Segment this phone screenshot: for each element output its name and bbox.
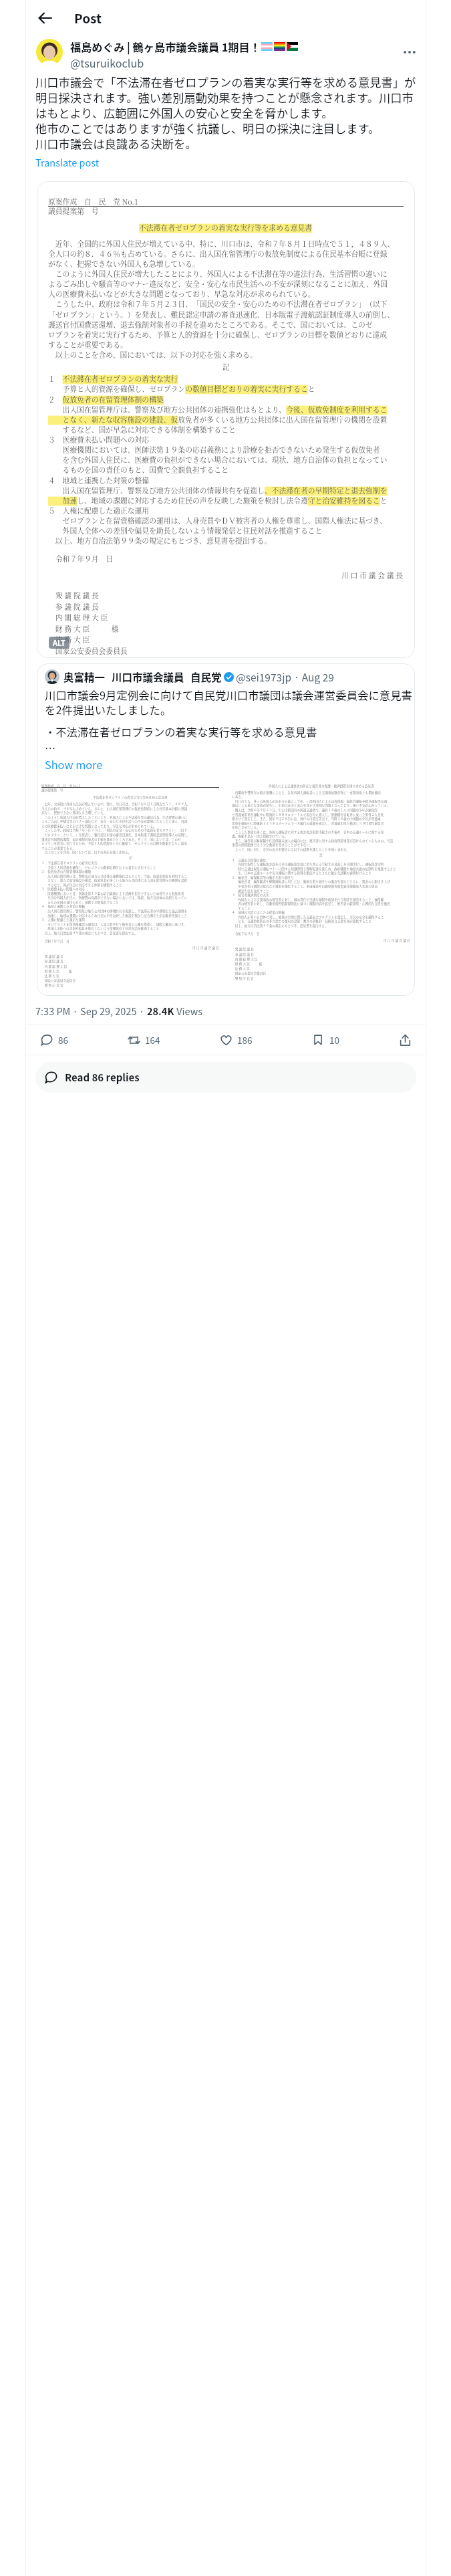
staticText: Views — [174, 1004, 203, 1018]
staticText: ２ 無免許、無保険者等の厳正な取り締まり — [232, 875, 294, 880]
staticText: 違反による重大な事故が発生し、市民の安全と安心を脅かす深刻な問題となっており、強… — [232, 803, 390, 808]
staticText: … — [45, 740, 56, 756]
staticText: 医療機関においては、医師法第１９条の応召義務により診療を拒否できないため発生する… — [48, 445, 380, 455]
button[interactable]: 86 — [35, 1029, 72, 1051]
staticText: 記 — [319, 853, 323, 857]
staticText: るものを国の責任のもと、国費で全額負担すること — [41, 900, 120, 905]
button[interactable]: Image 2 — [229, 778, 414, 996]
staticText: １ 不法滞在者ゼロプランの着実な実行 — [41, 861, 98, 865]
staticText: 参 議 院 議 長 — [48, 602, 99, 613]
button[interactable]: 奥富精一 — [37, 663, 415, 996]
button[interactable]: Read 86 replies — [35, 1062, 416, 1093]
button[interactable]: Show more — [45, 756, 103, 772]
staticText: ５ 人権に配慮した適正な運用 — [48, 506, 150, 516]
staticText: こうした事故の多くは、外国人運転者に対する免許免許取得手続きの不備や、日本の交通… — [232, 830, 384, 835]
staticText: を含む外国人住民に、医療費の負担ができない場合においては、現状、地方自治体の負担… — [41, 895, 188, 900]
staticText: ３ 医療費未払い問題への対応 — [41, 887, 85, 891]
staticText: 出入国在留管理庁は、警察及び地方公共団体の連携強化はもとより、今後、仮放免制度を… — [41, 874, 188, 879]
staticText: 以上、地方自治法第９９条の規定にもとづき、意見書を提出する。 — [48, 536, 272, 546]
staticText: 護送官付国費送還増、退去強制対象者の手続を進めたところである。そこで、国において… — [41, 837, 181, 842]
button[interactable]: 164 — [122, 1029, 164, 1051]
staticText: 参 議 院 議 長 — [41, 959, 63, 964]
staticText: 内閣府や警察庁の統計情報によると、近年外国人運転者による交通事故数が死亡・重傷事… — [232, 790, 381, 795]
staticText: 護送官付国費送還増、退去強制対象者の手続を進めたところである。そこで、国において… — [48, 320, 373, 330]
button[interactable]: Image 1 — [38, 778, 222, 996]
staticText: こうした中、政府は令和７年５月２３日、「国民の安全・安心のための不法滞在者ゼロプ… — [41, 828, 188, 833]
staticText: 出入国在留管理庁、警察及び地方公共団体の情報共有を促進し、不法滞在者の早期特定と… — [48, 486, 388, 496]
staticText: 外国で取得した運転免許証を日本の運転免許証に切り替える手続きの見直しを早期実行し… — [232, 862, 384, 867]
staticText: するなど、国が早急に対応できる体制を構築すること — [41, 883, 122, 887]
staticText: 川口市議会で「不法滞在者ゼロプランの着実な実行等を求める意見書」が明日採決されま… — [35, 74, 420, 152]
staticText: ２ 仮放免者の在留管理体制の構築 — [41, 869, 92, 874]
staticText: 記 — [222, 362, 230, 372]
button[interactable]: Back — [31, 5, 58, 31]
staticText: 加速し、地域の課題に対応するため住民の声を反映した施策を検討し法令遵守と治安維持… — [48, 496, 388, 506]
staticText: 川 口 市 議 会 議 長 — [341, 570, 404, 581]
staticText: 国家公安委員会委員長 — [41, 978, 76, 983]
staticText: 10 — [329, 1033, 339, 1047]
staticText: 186 — [237, 1033, 253, 1047]
staticText: 法 務 大 臣 — [232, 966, 250, 971]
staticText: 医療機関においては、医師法第１９条の応召義務により診療を拒否できないため発生する… — [41, 891, 184, 896]
staticText: 例えば、令和６年９月２３日、川口市新田川の国道交通省で、速約１８歳のトルコ国籍の… — [232, 808, 378, 813]
staticText: よるごみ出しや騒音等のマナー違反など、安全・安心な市民生活への不安が深刻になるこ… — [48, 279, 388, 290]
staticText: 以上のことを含め、国においては、以下の対応を強く求める。 — [41, 850, 132, 855]
staticText: また、無等者が無保険や任意保険未加入の場合には、被害者に対する政府保障事業が設け… — [232, 839, 394, 843]
staticText: となく、新たな収容施設の建設、仮放免者が多くいる地方公共団体に出入国在留管理庁の… — [41, 878, 188, 883]
staticText: ロプランを着実に実行するため、予算と人的資源を十分に確保し、ゼロプランの目標を数… — [41, 841, 187, 846]
staticText: することが重要である。 — [41, 846, 76, 851]
staticText: ４ 地域の実情に応じた支援策の整備 — [232, 910, 285, 915]
button[interactable]: Translate post — [35, 155, 100, 169]
staticText: 以上、地方自治法第９９条の規定にもとづき、意見書を提出する。 — [232, 924, 328, 928]
staticText: 86 — [58, 1033, 68, 1047]
staticText: 以上のことを含め、国においては、以下の対応を強く求める。 — [48, 350, 257, 360]
staticText: 者の被害者に対し、自動車損害賠償保障法に基づく補償内容を拡充し、被害者の経済的・… — [232, 901, 390, 906]
staticText: ALT — [53, 637, 65, 648]
staticText: ゼロプランと在留資格確認の運用は、人身売買やＤＶ被害者の人権を尊重し、国際人権法… — [41, 922, 187, 927]
staticText: 令和７年９月 日 — [41, 939, 69, 944]
staticText: 法 務 大 臣 — [48, 635, 90, 645]
staticText: 164 — [145, 1033, 160, 1047]
staticText: 識、規範不足が一因と指摘されている。 — [232, 834, 288, 839]
staticText: とを、交通事故防止の多言語での案内の設置・教育の研修的・技術的な支援を国が提供す… — [232, 919, 371, 924]
staticText: 不法滞在者ゼロプランの着実な実行等を求める意見書 — [139, 223, 313, 233]
button[interactable]: Profile picture — [36, 39, 63, 66]
staticText: を死亡させている。 — [232, 825, 260, 830]
button[interactable]: Share — [394, 1029, 416, 1051]
staticText: ３ 被害者救済制度の充実 — [232, 893, 269, 897]
staticText: 予算と人的資源を確保し、ゼロプランの数値目標どおりの着実に実行すること — [41, 865, 156, 870]
staticText: 「ゼロプラン」という。）を発表し、難民認定申請の審査迅速化、日本版電子渡航認証制… — [48, 310, 395, 320]
staticText: 警 察 庁 長 官 — [41, 983, 63, 988]
button[interactable]: 186 — [214, 1029, 257, 1051]
staticText: Read 86 replies — [65, 1070, 140, 1085]
staticText: 内 閣 総 理 大 臣 — [232, 957, 258, 962]
button[interactable]: More options — [399, 41, 420, 63]
button[interactable]: 10 — [307, 1029, 343, 1051]
staticText: 加速し、地域の課題に対応するため住民の声を反映した施策を検討し法令遵守と治安維持… — [41, 914, 188, 918]
staticText: 川 口 市 議 会 議 長 — [192, 946, 219, 950]
staticText: このように外国人住民が増大したことにより、外国人による不法滞在等の違法行為、生活… — [41, 815, 188, 820]
staticText: 予算と人的資源を確保し、ゼロプランの数値目標どおりの着実に実行すること — [48, 384, 315, 395]
staticText: 傷させて逃走した。また、同年９月２８日には、神戸の市道交差点で、当時１８歳の中国… — [232, 817, 381, 821]
staticText: も、日本の交通ルールや安全運転に関する指導を徹底するとともに確かな試験の義務付け… — [232, 871, 371, 875]
staticText: 財 務 大 臣 様 — [48, 624, 119, 635]
staticText: 人の医療費未払いなどが大きな問題となっており、早急な対応が求められている。 — [48, 289, 315, 300]
staticText: 衆 議 院 議 長 — [48, 591, 99, 601]
staticText: 出入国在留管理庁、警察及び地方公共団体の情報共有を促進し、不法滞在者の早期特定と… — [41, 909, 188, 914]
staticText: よって、国に対し、市民の安全を緊急には以下の措置を講じることを強く求める。 — [232, 847, 350, 852]
staticText: Post — [74, 9, 102, 27]
staticText: 出入国在留管理庁は、警察及び地方公共団体の連携強化はもとより、今後、仮放免制度を… — [48, 405, 388, 415]
staticText: 川口市でも、多くの外国人が法を守る暮らしで中、一部外国人による法度逸脱、無免許運… — [232, 799, 388, 804]
staticText: 奥富精一 — [63, 669, 106, 684]
staticText: 福島めぐみ | 鶴ヶ島市議会議員 1期目！ — [70, 39, 261, 54]
staticText: 原案作成 自 民 党 No.1 — [48, 197, 138, 207]
staticText: 時に交通法規及び運転マナーに関する知識習得と理解促進を進ため、政府機関や地域共通… — [232, 867, 396, 871]
staticText: ２ 仮放免者の在留管理体制の構築 — [48, 395, 164, 405]
button[interactable]: Image — [37, 181, 415, 658]
staticText: 自民党 — [190, 669, 222, 684]
staticText: ゼロプランと在留資格確認の運用は、人身売買やＤＶ被害者の人権を尊重し、国際人権法… — [48, 516, 388, 526]
staticText: 議員提案第 号 — [48, 206, 99, 217]
staticText: １ 不法滞在者ゼロプランの着実な実行 — [48, 374, 178, 385]
staticText: 川 口 市 議 会 議 長 — [384, 938, 410, 943]
